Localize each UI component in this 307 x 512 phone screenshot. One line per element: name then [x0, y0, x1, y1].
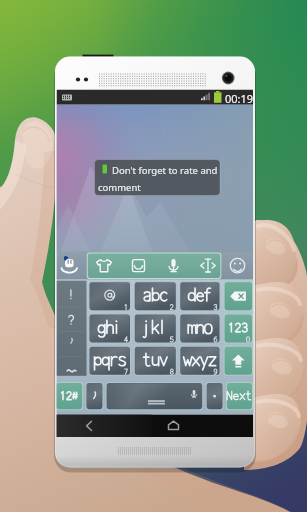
button[interactable]: Back	[78, 415, 106, 437]
button[interactable]: Input method	[57, 252, 88, 280]
button[interactable]: Home	[160, 415, 188, 437]
button[interactable]: Don't forget to rate and	[112, 164, 218, 177]
button[interactable]: Shift	[224, 346, 253, 376]
button[interactable]: Emoji	[221, 252, 253, 280]
staticText: Don't forget to rate and	[112, 164, 218, 177]
button[interactable]: Theme	[87, 253, 121, 279]
staticText: comment	[98, 181, 141, 194]
button[interactable]: Symbols	[56, 382, 84, 410]
button[interactable]: Space	[106, 382, 204, 410]
button[interactable]: Next	[226, 382, 253, 410]
staticText: 00:19	[225, 91, 254, 106]
button[interactable]: Backspace	[224, 281, 253, 311]
button[interactable]: Move cursor	[188, 253, 222, 279]
button[interactable]: Numbers	[224, 314, 253, 344]
button[interactable]: Stickers	[120, 253, 154, 279]
button[interactable]: Voice input	[154, 253, 188, 279]
